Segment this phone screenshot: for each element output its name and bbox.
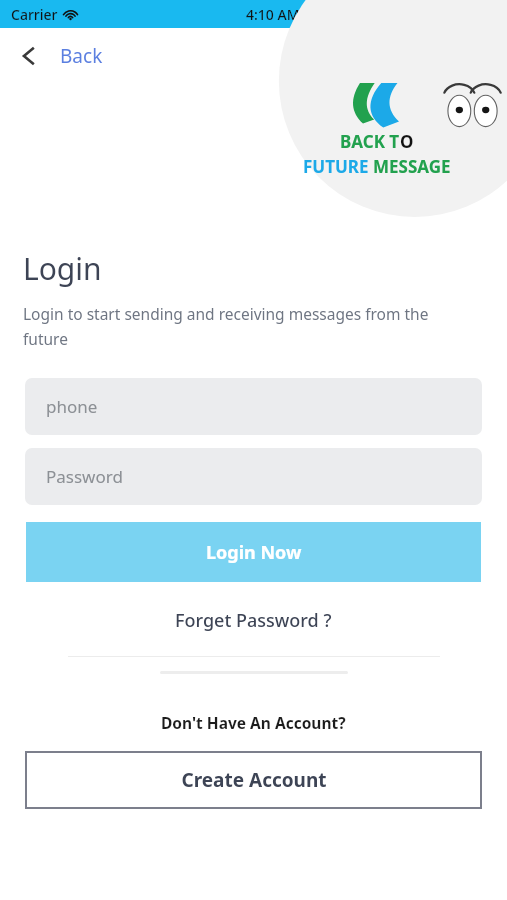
button[interactable]: Forget Password ?: [0, 604, 507, 637]
staticText: Carrier: [11, 5, 58, 24]
staticText: 4:10 AM: [246, 5, 300, 24]
staticText: Login: [23, 248, 102, 289]
staticText: FUTURE: [303, 155, 373, 178]
staticText: Back: [60, 43, 103, 69]
staticText: Forget Password ?: [175, 608, 332, 633]
button[interactable]: Password: [25, 448, 482, 505]
staticText: Don't Have An Account?: [161, 712, 346, 733]
button[interactable]: Back: [0, 34, 119, 78]
staticText: phone: [46, 395, 98, 418]
staticText: O: [400, 130, 414, 153]
staticText: MESSAGE: [373, 155, 451, 178]
button[interactable]: Login Now: [26, 522, 481, 582]
staticText: Password: [46, 465, 123, 488]
staticText: Create Account: [181, 767, 327, 793]
staticText: Login to start sending and receiving mes…: [23, 303, 465, 350]
button[interactable]: Create Account: [25, 751, 482, 809]
button[interactable]: phone: [25, 378, 482, 435]
staticText: BACK T: [340, 130, 400, 153]
staticText: Login Now: [206, 540, 302, 565]
